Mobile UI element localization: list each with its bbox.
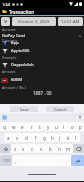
staticText: x <box>22 146 25 152</box>
button[interactable]: y <box>44 122 52 131</box>
staticText: k <box>67 135 70 141</box>
staticText: p <box>79 124 82 130</box>
staticText: a <box>7 135 10 141</box>
staticText: f <box>35 135 37 141</box>
button[interactable]: a <box>4 133 13 142</box>
staticText: m <box>66 146 71 152</box>
button[interactable]: s <box>13 133 22 142</box>
staticText: 600M <box>11 77 22 83</box>
staticText: s <box>16 135 19 141</box>
staticText: d <box>25 135 28 141</box>
staticText: 12:01 AM <box>61 19 80 25</box>
staticText: Save <box>20 107 29 112</box>
button[interactable]: App <box>2 39 84 47</box>
staticText: 1887 . 00 <box>33 90 52 96</box>
staticText: App <box>11 40 19 46</box>
button[interactable]: Apple365 <box>2 47 84 55</box>
staticText: Amount <box>2 69 16 74</box>
button[interactable]: e <box>18 122 27 131</box>
button[interactable]: ?123 <box>0 155 12 166</box>
staticText: u <box>55 124 58 130</box>
button[interactable]: n <box>55 144 64 153</box>
staticText: r <box>31 124 33 130</box>
button[interactable]: App icon <box>2 9 7 14</box>
staticText: l <box>75 135 77 141</box>
button[interactable]: , <box>12 155 20 166</box>
staticText: j <box>59 135 61 141</box>
button[interactable]: Enter <box>71 155 84 166</box>
staticText: Dappublish <box>11 62 34 68</box>
button[interactable]: Cancel <box>46 106 74 112</box>
staticText: n <box>58 146 61 152</box>
button[interactable]: b <box>46 144 55 153</box>
staticText: ?123 <box>3 159 10 163</box>
button[interactable]: Backspace <box>73 144 84 153</box>
staticText: t <box>39 124 41 130</box>
button[interactable]: r <box>27 122 36 131</box>
button[interactable]: Google search <box>2 115 7 120</box>
button[interactable]: 12:01 AM <box>58 17 83 26</box>
button[interactable]: c <box>28 144 37 153</box>
button[interactable]: . <box>63 155 71 166</box>
staticText: h <box>51 135 54 141</box>
staticText: c <box>31 146 34 152</box>
button[interactable]: m <box>64 144 73 153</box>
button[interactable]: o <box>68 122 76 131</box>
button[interactable]: d <box>22 133 31 142</box>
button[interactable]: k <box>64 133 72 142</box>
button[interactable]: q <box>0 122 9 131</box>
button[interactable]: u <box>52 122 60 131</box>
button[interactable]: v <box>37 144 46 153</box>
button[interactable]: Favorite <box>1 17 10 26</box>
button[interactable]: i <box>60 122 68 131</box>
staticText: Cancel <box>54 107 67 112</box>
button[interactable]: f <box>31 133 40 142</box>
button[interactable]: j <box>56 133 64 142</box>
staticText: Example <box>2 55 17 60</box>
button[interactable]: Voice input <box>78 115 82 119</box>
staticText: GoPay Card <box>2 33 25 39</box>
staticText: q <box>3 124 6 130</box>
staticText: z <box>14 146 17 152</box>
staticText: Transaction <box>9 9 34 15</box>
button[interactable]: h <box>48 133 56 142</box>
button[interactable]: w <box>9 122 18 131</box>
staticText: g <box>43 135 46 141</box>
staticText: , <box>15 158 17 164</box>
staticText: i <box>63 124 65 130</box>
button[interactable]: p <box>76 122 84 131</box>
staticText: b <box>49 146 52 152</box>
staticText: October 3, 2023 <box>18 19 50 25</box>
staticText: e <box>21 124 24 130</box>
staticText: 1:34 <box>2 2 10 7</box>
button[interactable]: Shift <box>0 144 11 153</box>
staticText: Apple365 <box>11 48 30 54</box>
button[interactable]: 600M <box>1 77 83 83</box>
staticText: y <box>47 124 50 130</box>
button[interactable]: g <box>40 133 48 142</box>
button[interactable]: z <box>11 144 19 153</box>
staticText: Category <box>2 38 18 43</box>
staticText: v <box>40 146 43 152</box>
staticText: Amount / (Rs.) <box>2 85 26 90</box>
button[interactable]: Account <box>2 27 82 39</box>
staticText: . <box>66 158 68 164</box>
staticText: w <box>12 124 16 130</box>
staticText: Account <box>2 27 16 32</box>
button[interactable]: Save <box>10 106 38 112</box>
button[interactable]: l <box>72 133 80 142</box>
button[interactable]: t <box>36 122 44 131</box>
button[interactable]: Dappublish <box>2 61 84 69</box>
staticText: o <box>71 124 74 130</box>
button[interactable]: x <box>19 144 28 153</box>
button[interactable]: October 3, 2023 <box>12 17 56 26</box>
button[interactable]: 1887 . 00 <box>0 90 84 96</box>
